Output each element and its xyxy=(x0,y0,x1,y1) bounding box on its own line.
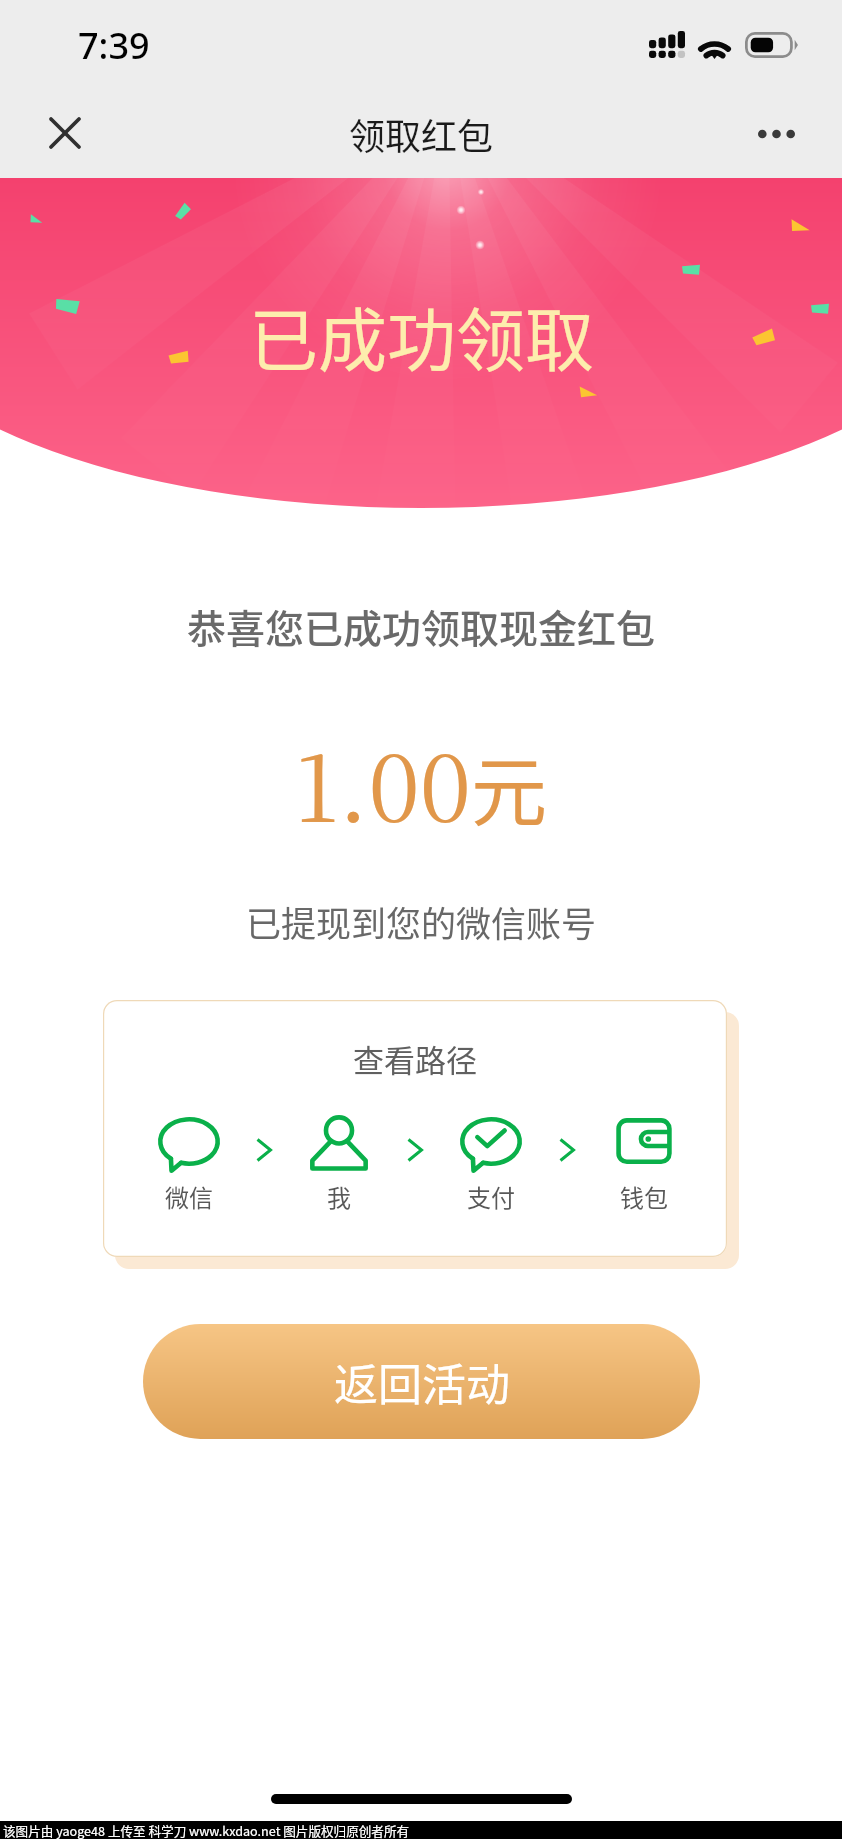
staticText: 恭喜您已成功领取现金红包 xyxy=(187,598,656,654)
staticText: 元 xyxy=(471,732,547,842)
staticText: 钱包 xyxy=(620,1179,668,1214)
staticText: 已成功领取 xyxy=(249,286,594,386)
button[interactable]: Close xyxy=(36,104,94,162)
staticText: 7:39 xyxy=(78,21,150,70)
staticText: 返回活动 xyxy=(334,1350,510,1414)
staticText: 查看路径 xyxy=(353,1036,477,1081)
staticText: 已提现到您的微信账号 xyxy=(246,896,597,947)
staticText: 微信 xyxy=(165,1179,213,1214)
staticText: 支付 xyxy=(467,1179,515,1214)
staticText: 该图片由 yaoge48 上传至 科学刀 www.kxdao.net 图片版权归… xyxy=(3,1821,410,1839)
button[interactable]: 支付 xyxy=(447,1117,535,1214)
button[interactable]: 我 xyxy=(295,1117,383,1214)
staticText: 领取红包 xyxy=(349,108,494,160)
button[interactable]: More options xyxy=(747,105,806,163)
button[interactable]: 返回活动 xyxy=(143,1324,700,1439)
button[interactable]: 微信 xyxy=(145,1117,233,1214)
staticText: 1.00 xyxy=(295,716,471,848)
button[interactable]: 钱包 xyxy=(600,1117,688,1214)
staticText: 我 xyxy=(327,1179,351,1214)
